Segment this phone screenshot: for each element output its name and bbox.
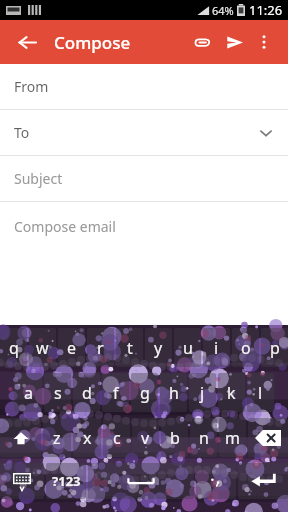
- staticText: Subject: [14, 169, 63, 188]
- staticText: 64%: [212, 3, 234, 18]
- button[interactable]: ?123: [46, 463, 86, 499]
- button[interactable]: t: [116, 328, 143, 367]
- staticText: n: [199, 427, 209, 449]
- staticText: g: [140, 382, 150, 404]
- button[interactable]: m: [219, 418, 246, 457]
- staticText: t: [127, 337, 133, 359]
- staticText: r: [97, 337, 104, 359]
- button[interactable]: k: [218, 373, 245, 412]
- button[interactable]: More options: [250, 28, 278, 56]
- staticText: From: [14, 77, 49, 96]
- button[interactable]: Back: [10, 25, 44, 59]
- staticText: Compose: [54, 31, 131, 54]
- button[interactable]: Attach file: [186, 26, 218, 58]
- button[interactable]: SPACE: [88, 463, 194, 499]
- staticText: u: [183, 337, 193, 359]
- button[interactable]: c: [103, 418, 130, 457]
- staticText: m: [225, 427, 240, 449]
- staticText: y: [154, 337, 163, 359]
- button[interactable]: Compose email: [0, 202, 288, 250]
- staticText: o: [241, 337, 251, 359]
- staticText: z: [53, 427, 61, 449]
- button[interactable]: Send: [218, 26, 250, 58]
- staticText: j: [200, 382, 205, 404]
- button[interactable]: From: [0, 64, 288, 109]
- staticText: h: [169, 382, 179, 404]
- staticText: ?123: [52, 472, 81, 490]
- button[interactable]: u: [174, 328, 201, 367]
- button[interactable]: q: [0, 328, 27, 367]
- staticText: To: [14, 123, 30, 142]
- button[interactable]: i: [203, 328, 230, 367]
- button[interactable]: v: [132, 418, 159, 457]
- staticText: a: [24, 382, 33, 404]
- button[interactable]: x: [73, 418, 101, 457]
- button[interactable]: z: [43, 418, 71, 457]
- staticText: v: [141, 427, 150, 449]
- button[interactable]: h: [160, 373, 187, 412]
- button[interactable]: f: [102, 373, 129, 412]
- button[interactable]: d: [73, 373, 100, 412]
- button[interactable]: n: [190, 418, 217, 457]
- staticText: s: [54, 382, 62, 404]
- button[interactable]: l: [247, 373, 274, 412]
- staticText: d: [82, 382, 92, 404]
- button[interactable]: b: [161, 418, 188, 457]
- staticText: f: [113, 382, 119, 404]
- staticText: b: [170, 427, 180, 449]
- button[interactable]: DELETE: [248, 418, 288, 457]
- button[interactable]: s: [44, 373, 71, 412]
- staticText: Compose email: [14, 217, 116, 236]
- staticText: e: [67, 337, 77, 359]
- button[interactable]: COMMA: [196, 463, 236, 499]
- button[interactable]: o: [232, 328, 259, 367]
- button[interactable]: g: [131, 373, 158, 412]
- button[interactable]: r: [87, 328, 114, 367]
- staticText: l: [258, 382, 263, 404]
- staticText: c: [113, 427, 121, 449]
- button[interactable]: SHIFT: [0, 418, 41, 457]
- staticText: 11:26: [249, 1, 283, 19]
- staticText: q: [9, 337, 19, 359]
- button[interactable]: e: [58, 328, 85, 367]
- staticText: x: [83, 427, 92, 449]
- staticText: i: [214, 337, 219, 359]
- button[interactable]: ENTER: [238, 463, 288, 499]
- button[interactable]: w: [29, 328, 56, 367]
- button[interactable]: p: [261, 328, 288, 367]
- staticText: p: [270, 337, 280, 359]
- button[interactable]: j: [189, 373, 216, 412]
- staticText: k: [227, 382, 236, 404]
- button[interactable]: y: [145, 328, 172, 367]
- button[interactable]: To: [0, 110, 288, 155]
- button[interactable]: a: [14, 373, 42, 412]
- staticText: w: [36, 337, 49, 359]
- button[interactable]: Subject: [0, 156, 288, 201]
- button[interactable]: IME: [0, 463, 44, 499]
